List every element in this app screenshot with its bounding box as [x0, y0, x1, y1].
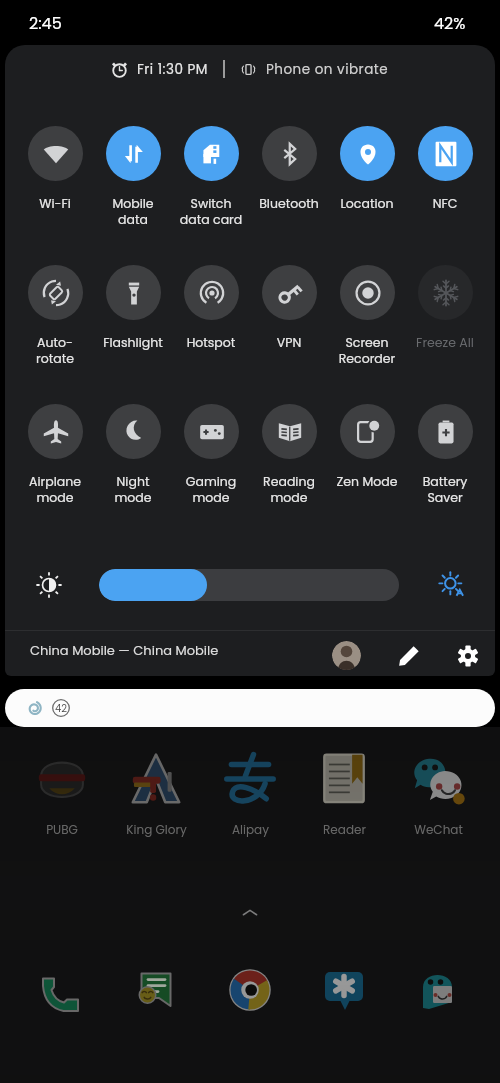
- staticText: Airplane mode: [16, 473, 94, 506]
- button[interactable]: Reader: [305, 750, 383, 838]
- staticText: Fri 1:30 PM: [137, 60, 208, 79]
- staticText: Battery Saver: [406, 473, 484, 506]
- staticText: Wi-Fi: [16, 195, 94, 212]
- staticText: PUBG: [46, 821, 78, 838]
- button[interactable]: [99, 569, 399, 601]
- button[interactable]: Auto brightness: [437, 570, 467, 600]
- button[interactable]: Notes: [305, 962, 383, 1018]
- button[interactable]: Phone: [23, 962, 101, 1018]
- button[interactable]: Flashlight: [94, 265, 172, 351]
- button[interactable]: Alipay: [211, 750, 289, 838]
- button[interactable]: NFC: [406, 126, 484, 212]
- button[interactable]: Gaming mode: [172, 404, 250, 506]
- button[interactable]: 42: [5, 689, 495, 727]
- staticText: Bluetooth: [250, 195, 328, 212]
- staticText: NFC: [406, 195, 484, 212]
- button[interactable]: Wi-Fi: [16, 126, 94, 212]
- button[interactable]: Location: [328, 126, 406, 212]
- staticText: Alipay: [232, 821, 269, 838]
- staticText: Zen Mode: [328, 473, 406, 490]
- button[interactable]: VPN: [250, 265, 328, 351]
- button[interactable]: User profile: [332, 641, 361, 670]
- button[interactable]: Battery Saver: [406, 404, 484, 506]
- staticText: Reading mode: [250, 473, 328, 506]
- staticText: Gaming mode: [172, 473, 250, 506]
- staticText: Flashlight: [94, 334, 172, 351]
- staticText: 42: [55, 701, 68, 715]
- button[interactable]: Brightness: [34, 570, 64, 600]
- staticText: Reader: [323, 821, 366, 838]
- button[interactable]: Messages: [117, 962, 195, 1018]
- button[interactable]: Freeze All: [406, 265, 484, 351]
- staticText: Night mode: [94, 473, 172, 506]
- staticText: Hotspot: [172, 334, 250, 351]
- staticText: King Glory: [126, 821, 187, 838]
- button[interactable]: Night mode: [94, 404, 172, 506]
- staticText: VPN: [250, 334, 328, 351]
- staticText: Phone on vibrate: [266, 60, 389, 79]
- staticText: 2:45: [29, 12, 62, 34]
- staticText: Freeze All: [406, 334, 484, 351]
- button[interactable]: Reading mode: [250, 404, 328, 506]
- button[interactable]: Show all apps: [236, 899, 264, 927]
- staticText: 42%: [434, 12, 466, 34]
- button[interactable]: Settings: [453, 641, 482, 670]
- button[interactable]: Edit: [395, 641, 424, 670]
- button[interactable]: Airplane mode: [16, 404, 94, 506]
- staticText: Switch data card: [172, 195, 250, 228]
- staticText: Mobile data: [94, 195, 172, 228]
- button[interactable]: Auto- rotate: [16, 265, 94, 367]
- button[interactable]: China Mobile — China Mobile: [30, 641, 219, 659]
- button[interactable]: King Glory: [117, 750, 195, 838]
- button[interactable]: Mobile data: [94, 126, 172, 228]
- button[interactable]: Browser: [211, 962, 289, 1018]
- button[interactable]: Zen Mode: [328, 404, 406, 490]
- staticText: Location: [328, 195, 406, 212]
- button[interactable]: Screen Recorder: [328, 265, 406, 367]
- button[interactable]: Switch data card: [172, 126, 250, 228]
- button[interactable]: Chat: [399, 962, 477, 1018]
- staticText: Auto- rotate: [16, 334, 94, 367]
- button[interactable]: Hotspot: [172, 265, 250, 351]
- button[interactable]: Bluetooth: [250, 126, 328, 212]
- button[interactable]: PUBG: [23, 750, 101, 838]
- button[interactable]: WeChat: [399, 750, 477, 838]
- staticText: WeChat: [414, 821, 463, 838]
- staticText: Screen Recorder: [328, 334, 406, 367]
